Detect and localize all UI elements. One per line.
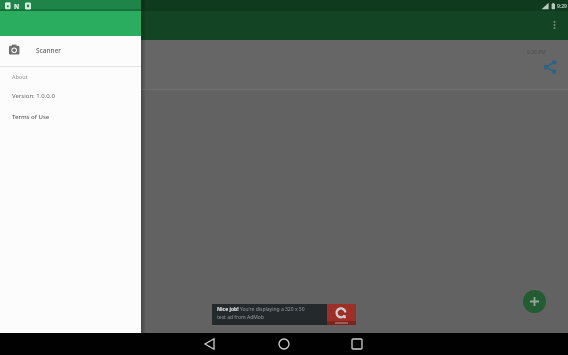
button[interactable] — [271, 333, 297, 355]
button[interactable] — [541, 58, 559, 76]
staticText: Terms of Use — [12, 113, 50, 121]
button[interactable]: Version: 1.0.0.0 — [0, 88, 141, 104]
staticText: Nice job! You're displaying a 320 x 50 — [217, 306, 305, 313]
button[interactable] — [344, 333, 370, 355]
staticText: test ad from AdMob — [217, 314, 264, 321]
button[interactable]: Scanner — [0, 38, 141, 64]
staticText: Version: 1.0.0.0 — [12, 92, 55, 100]
button[interactable] — [548, 16, 562, 34]
staticText: About — [12, 73, 28, 80]
button[interactable] — [523, 290, 546, 313]
button[interactable]: Terms of Use — [0, 109, 141, 125]
button[interactable]: Nice job! You're displaying a 320 x 50 — [212, 304, 356, 325]
staticText: 9:29 — [557, 3, 567, 10]
staticText: N — [14, 2, 20, 11]
staticText: 9:26 PM — [527, 49, 546, 56]
staticText: Scanner — [36, 46, 62, 55]
button[interactable] — [197, 333, 223, 355]
